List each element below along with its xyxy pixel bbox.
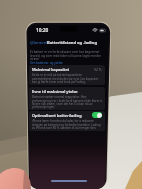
staticText: Generelt	[32, 40, 49, 46]
button[interactable]: Maksimal kapasitet	[29, 65, 105, 85]
button[interactable]: Optimalisert batterilading	[92, 112, 102, 118]
button[interactable]: Generelt	[29, 39, 50, 47]
staticText: Optimalisert batterilading	[32, 113, 82, 118]
staticText: Et batteri er en forbruksvare som har be…	[30, 50, 104, 61]
staticText: Batteriet støtter normal toppytelse. Hvi…	[32, 95, 102, 108]
button[interactable]: Optimalisert batterilading	[29, 111, 105, 131]
staticText: Dette er et mål på batterikapasiteten sa…	[32, 73, 102, 83]
staticText: 92 %	[94, 67, 102, 72]
staticText: Maksimal kapasitet	[32, 67, 70, 72]
staticText: Evne til maksimal ytelse	[32, 89, 78, 94]
staticText: iPhone lærer hvordan du lader, for å red…	[32, 119, 102, 129]
button[interactable]: Evne til maksimal ytelse	[29, 87, 105, 110]
button[interactable]: Om batterier og ytelse	[30, 61, 63, 65]
staticText: 10:20	[36, 27, 49, 34]
staticText: Batteritilstand og -lading	[47, 40, 97, 46]
other: Status icons	[93, 28, 106, 33]
